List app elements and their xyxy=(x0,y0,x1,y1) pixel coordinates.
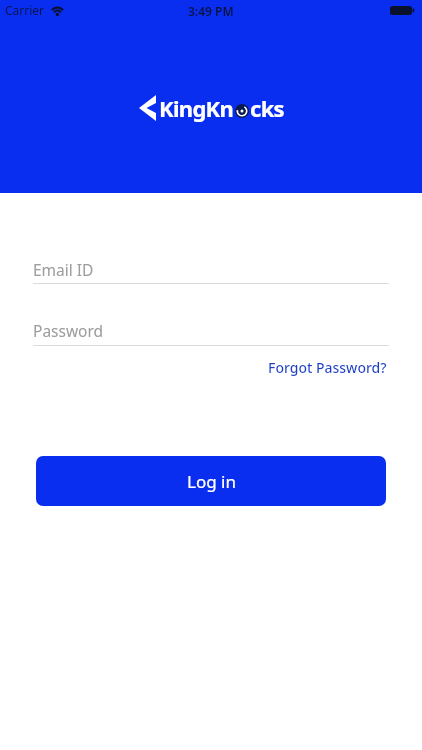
staticText: KingKn xyxy=(159,93,234,123)
staticText: Log in xyxy=(187,470,236,493)
staticText: Carrier xyxy=(5,2,45,18)
button[interactable]: Email ID xyxy=(33,259,389,280)
staticText: 3:49 PM xyxy=(188,3,234,19)
staticText: cks xyxy=(250,93,284,123)
staticText: Password xyxy=(33,320,104,341)
button[interactable]: Password xyxy=(33,320,389,341)
button[interactable]: Log in xyxy=(36,456,386,506)
button[interactable]: Forgot Password? xyxy=(268,358,387,377)
staticText: Forgot Password? xyxy=(268,358,387,377)
staticText: Email ID xyxy=(33,259,94,280)
